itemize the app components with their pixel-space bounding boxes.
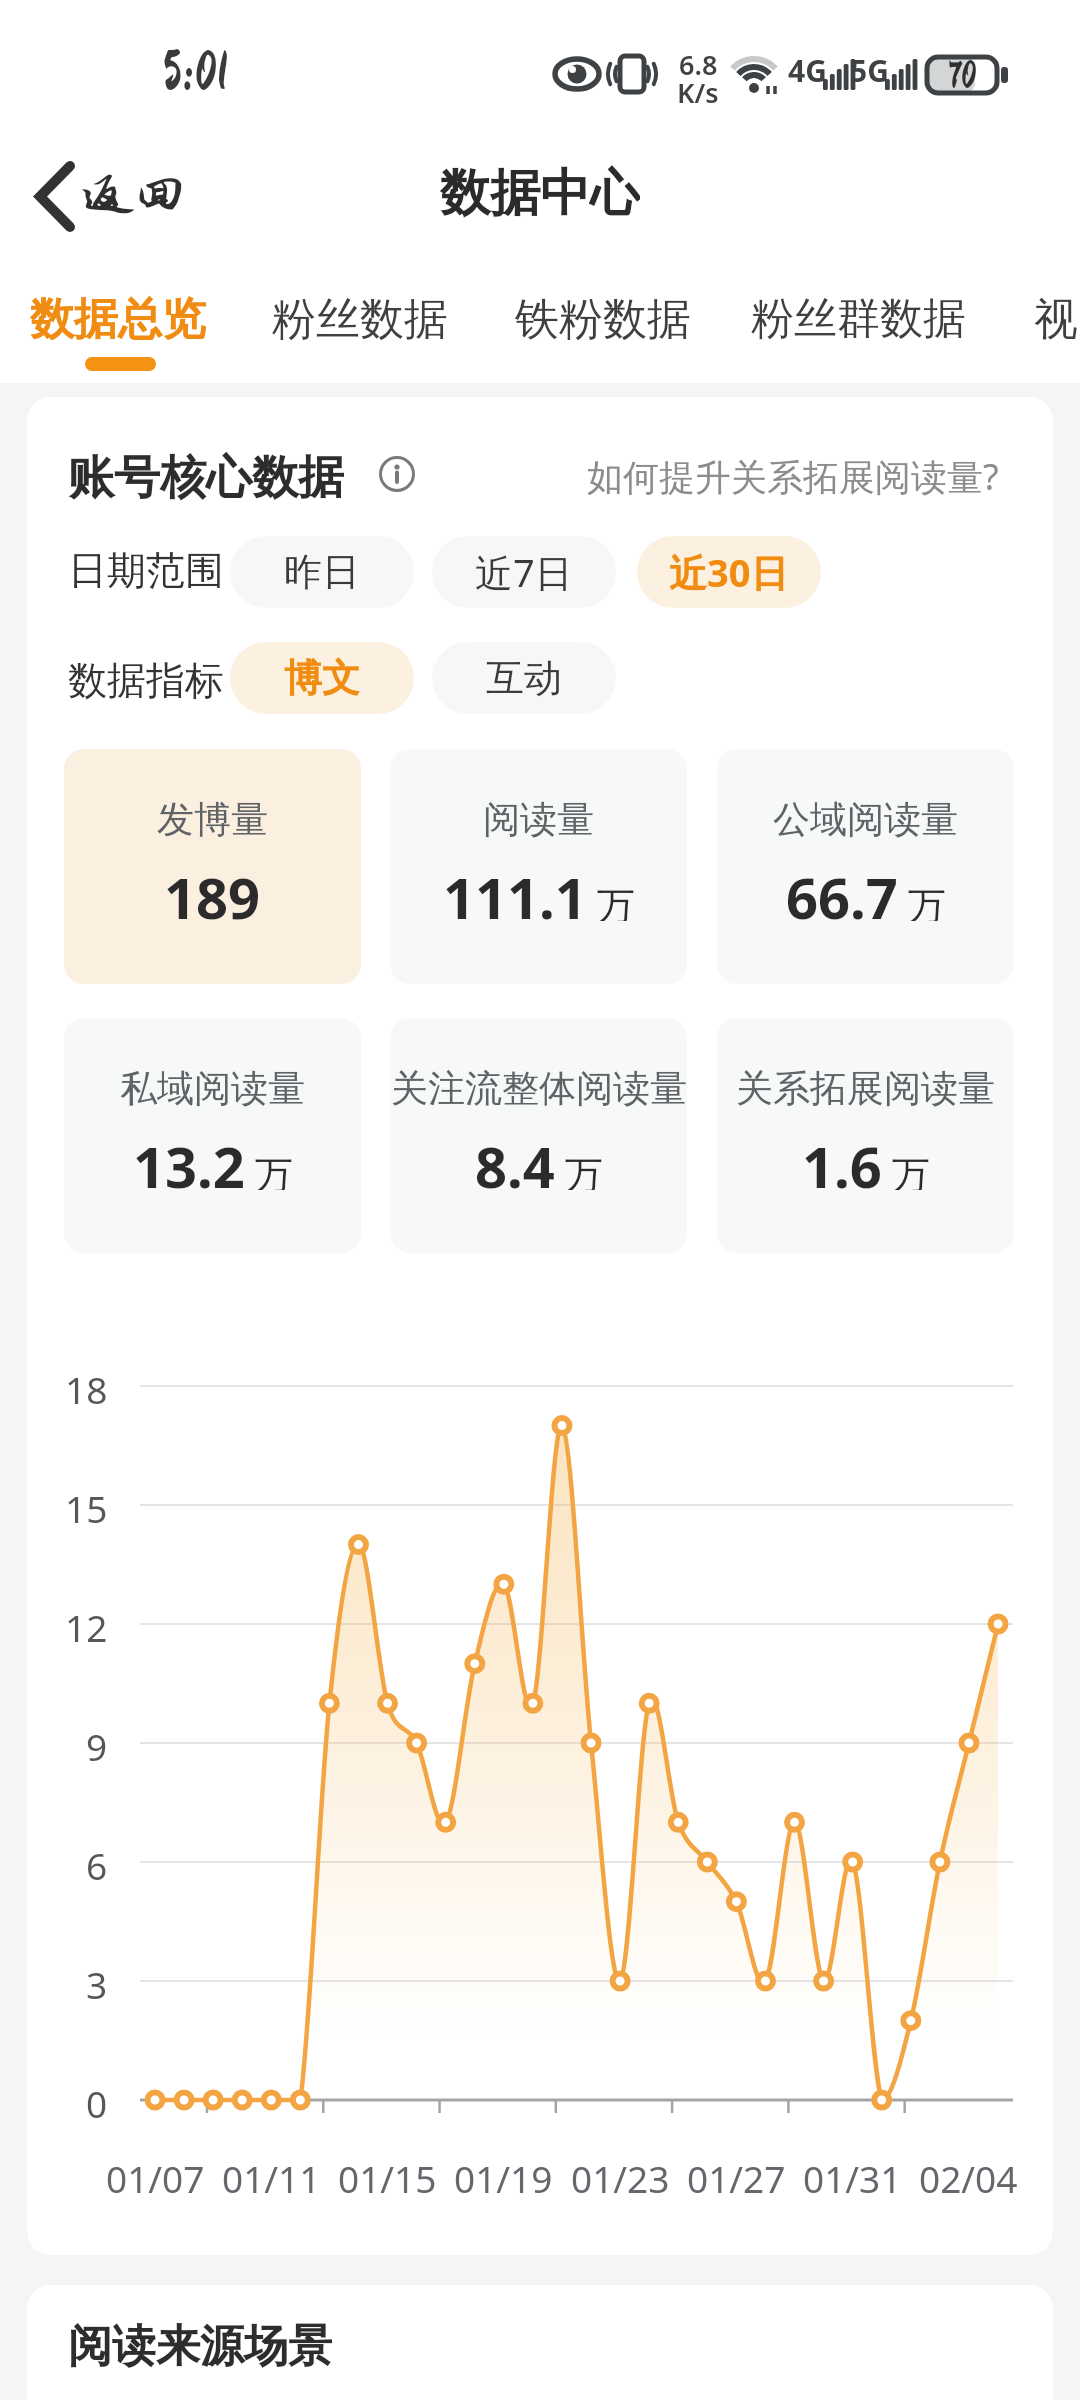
staticText: 粉丝群数据 [751, 292, 966, 340]
staticText: 铁粉数据 [515, 292, 691, 340]
staticText: 如何提升关系拓展阅读量? [587, 452, 999, 496]
staticText: 01/11 [222, 2153, 321, 2197]
button[interactable]: 互动 [432, 642, 616, 714]
staticText: 12 [65, 1602, 108, 1646]
staticText: 阅读来源场景 [68, 2319, 332, 2371]
button[interactable]: 粉丝数据 [270, 292, 450, 340]
staticText: 数据指标 [68, 656, 224, 700]
staticText: K/s [677, 74, 719, 104]
staticText: 昨日 [284, 548, 360, 596]
staticText: 粉丝数据 [272, 292, 448, 340]
staticText: 账号核心数据 [68, 449, 344, 501]
button[interactable]: 私域阅读量 [64, 1018, 361, 1253]
staticText: 视 [1034, 292, 1078, 340]
staticText: 6.8 [679, 46, 718, 76]
staticText: 02/04 [919, 2153, 1018, 2197]
staticText: 数据中心 [440, 162, 640, 220]
staticText: 日期范围 [68, 546, 224, 590]
staticText: 数据总览 [30, 292, 206, 340]
staticText: 公域阅读量 [773, 796, 958, 843]
staticText: 5G [850, 50, 889, 84]
staticText: 阅读量 [483, 796, 594, 843]
staticText: 01/31 [803, 2153, 902, 2197]
button[interactable]: 关系拓展阅读量 [717, 1018, 1014, 1253]
button[interactable]: 视 [1034, 292, 1080, 340]
staticText: 互动 [486, 654, 562, 702]
button[interactable]: 公域阅读量 [717, 749, 1014, 984]
staticText: 0 [86, 2078, 108, 2122]
staticText: 5:01 [162, 44, 228, 98]
staticText: 8.4 万 [475, 1128, 603, 1190]
staticText: 01/07 [106, 2153, 205, 2197]
staticText: 66.7 万 [786, 859, 946, 921]
staticText: 01/23 [571, 2153, 670, 2197]
staticText: 13.2 万 [133, 1128, 293, 1190]
button[interactable]: 近7日 [432, 536, 616, 608]
staticText: 近30日 [669, 546, 789, 598]
button[interactable]: 昨日 [230, 536, 414, 608]
staticText: 3 [86, 1959, 108, 2003]
staticText: 01/19 [454, 2153, 553, 2197]
staticText: 发博量 [157, 796, 268, 843]
button[interactable]: 返回 [30, 150, 200, 240]
button[interactable]: 粉丝群数据 [748, 292, 968, 340]
staticText: 111.1 万 [443, 859, 635, 921]
button[interactable]: 如何提升关系拓展阅读量? [527, 452, 999, 496]
button[interactable]: 数据总览 [28, 292, 208, 340]
staticText: 1.6 万 [802, 1128, 930, 1190]
button[interactable]: 铁粉数据 [513, 292, 693, 340]
staticText: 私域阅读量 [120, 1065, 305, 1112]
staticText: 9 [86, 1721, 108, 1765]
staticText: 70 [948, 56, 977, 94]
staticText: 6 [86, 1840, 108, 1884]
staticText: 01/27 [687, 2153, 786, 2197]
staticText: 近7日 [475, 546, 573, 598]
button[interactable]: 发博量 [64, 749, 361, 984]
staticText: 博文 [284, 654, 360, 702]
staticText: 关系拓展阅读量 [736, 1065, 995, 1112]
button[interactable]: 关注流整体阅读量 [390, 1018, 687, 1253]
button[interactable]: 阅读量 [390, 749, 687, 984]
staticText: 18 [65, 1364, 108, 1408]
button[interactable]: 博文 [230, 642, 414, 714]
button[interactable]: 近30日 [637, 536, 821, 608]
staticText: 15 [65, 1483, 108, 1527]
staticText: 返回 [82, 166, 187, 224]
staticText: 关注流整体阅读量 [391, 1065, 687, 1112]
staticText: 189 [164, 859, 261, 921]
staticText: 4G [788, 50, 827, 84]
staticText: 01/15 [338, 2153, 437, 2197]
